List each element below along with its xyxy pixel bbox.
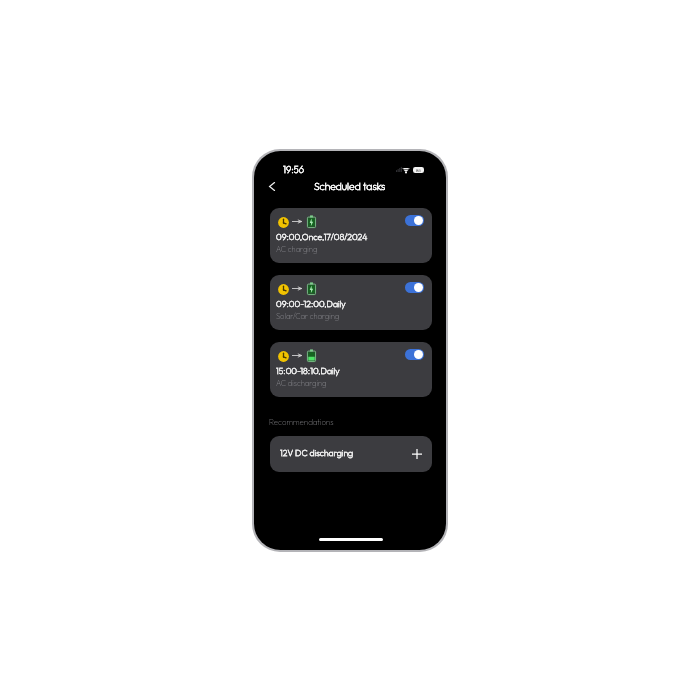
staticText: 09:00-12:00,Daily xyxy=(276,298,346,309)
staticText: 12V DC discharging xyxy=(280,447,354,458)
button[interactable]: Back xyxy=(262,176,282,196)
staticText: 09:00,Once,17/08/2024 xyxy=(276,231,368,242)
button[interactable]: Enable task xyxy=(270,275,432,330)
staticText: 19:56 xyxy=(283,164,304,176)
staticText: AC charging xyxy=(276,244,318,254)
staticText: 09:00-12:00,Daily xyxy=(276,298,346,309)
button[interactable]: Enable task xyxy=(270,208,432,263)
staticText: 86 xyxy=(416,167,422,173)
staticText: Recommendations xyxy=(269,417,334,427)
staticText: Solar/Car charging xyxy=(276,311,340,321)
button[interactable]: 12V DC discharging xyxy=(270,436,432,472)
staticText: AC discharging xyxy=(276,378,327,388)
staticText: Scheduled tasks xyxy=(314,180,386,193)
staticText: Scheduled tasks xyxy=(314,180,386,193)
staticText: 15:00-18:10,Daily xyxy=(276,365,340,376)
button[interactable]: Enable task xyxy=(405,282,424,293)
staticText: 12V DC discharging xyxy=(280,447,354,458)
staticText: 15:00-18:10,Daily xyxy=(276,365,340,376)
button[interactable]: Enable task xyxy=(405,349,424,360)
staticText: 19:56 xyxy=(283,164,304,176)
button[interactable]: Add recommendation xyxy=(410,447,424,461)
staticText: 09:00,Once,17/08/2024 xyxy=(276,231,368,242)
button[interactable]: Enable task xyxy=(270,342,432,397)
button[interactable]: Enable task xyxy=(405,215,424,226)
